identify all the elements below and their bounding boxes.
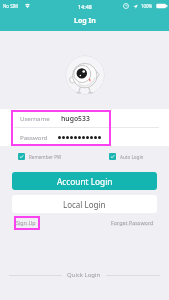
button[interactable]: Auto Login xyxy=(109,153,144,160)
staticText: 100% xyxy=(141,3,153,9)
button[interactable]: Password xyxy=(20,128,169,146)
staticText: Password xyxy=(20,133,48,141)
button[interactable]: Sign Up xyxy=(16,219,36,226)
staticText: Local Login xyxy=(63,199,106,210)
staticText: Remember PW xyxy=(29,154,62,160)
staticText: No SIM xyxy=(3,3,19,9)
staticText: Log In xyxy=(74,16,96,26)
button[interactable]: Account Login xyxy=(12,172,157,190)
staticText: Account Login xyxy=(57,176,113,187)
button[interactable]: Forget Password xyxy=(111,219,154,226)
staticText: Username xyxy=(20,114,50,122)
staticText: Quick Login xyxy=(67,271,101,279)
button[interactable]: Local Login xyxy=(12,195,157,213)
button[interactable]: Username xyxy=(20,109,169,127)
button[interactable]: Profile avatar xyxy=(65,55,105,95)
staticText: 14:48 xyxy=(78,3,92,10)
staticText: Auto Login xyxy=(120,154,144,160)
button[interactable]: Remember PW xyxy=(18,153,62,160)
staticText: hugo533 xyxy=(61,114,90,123)
